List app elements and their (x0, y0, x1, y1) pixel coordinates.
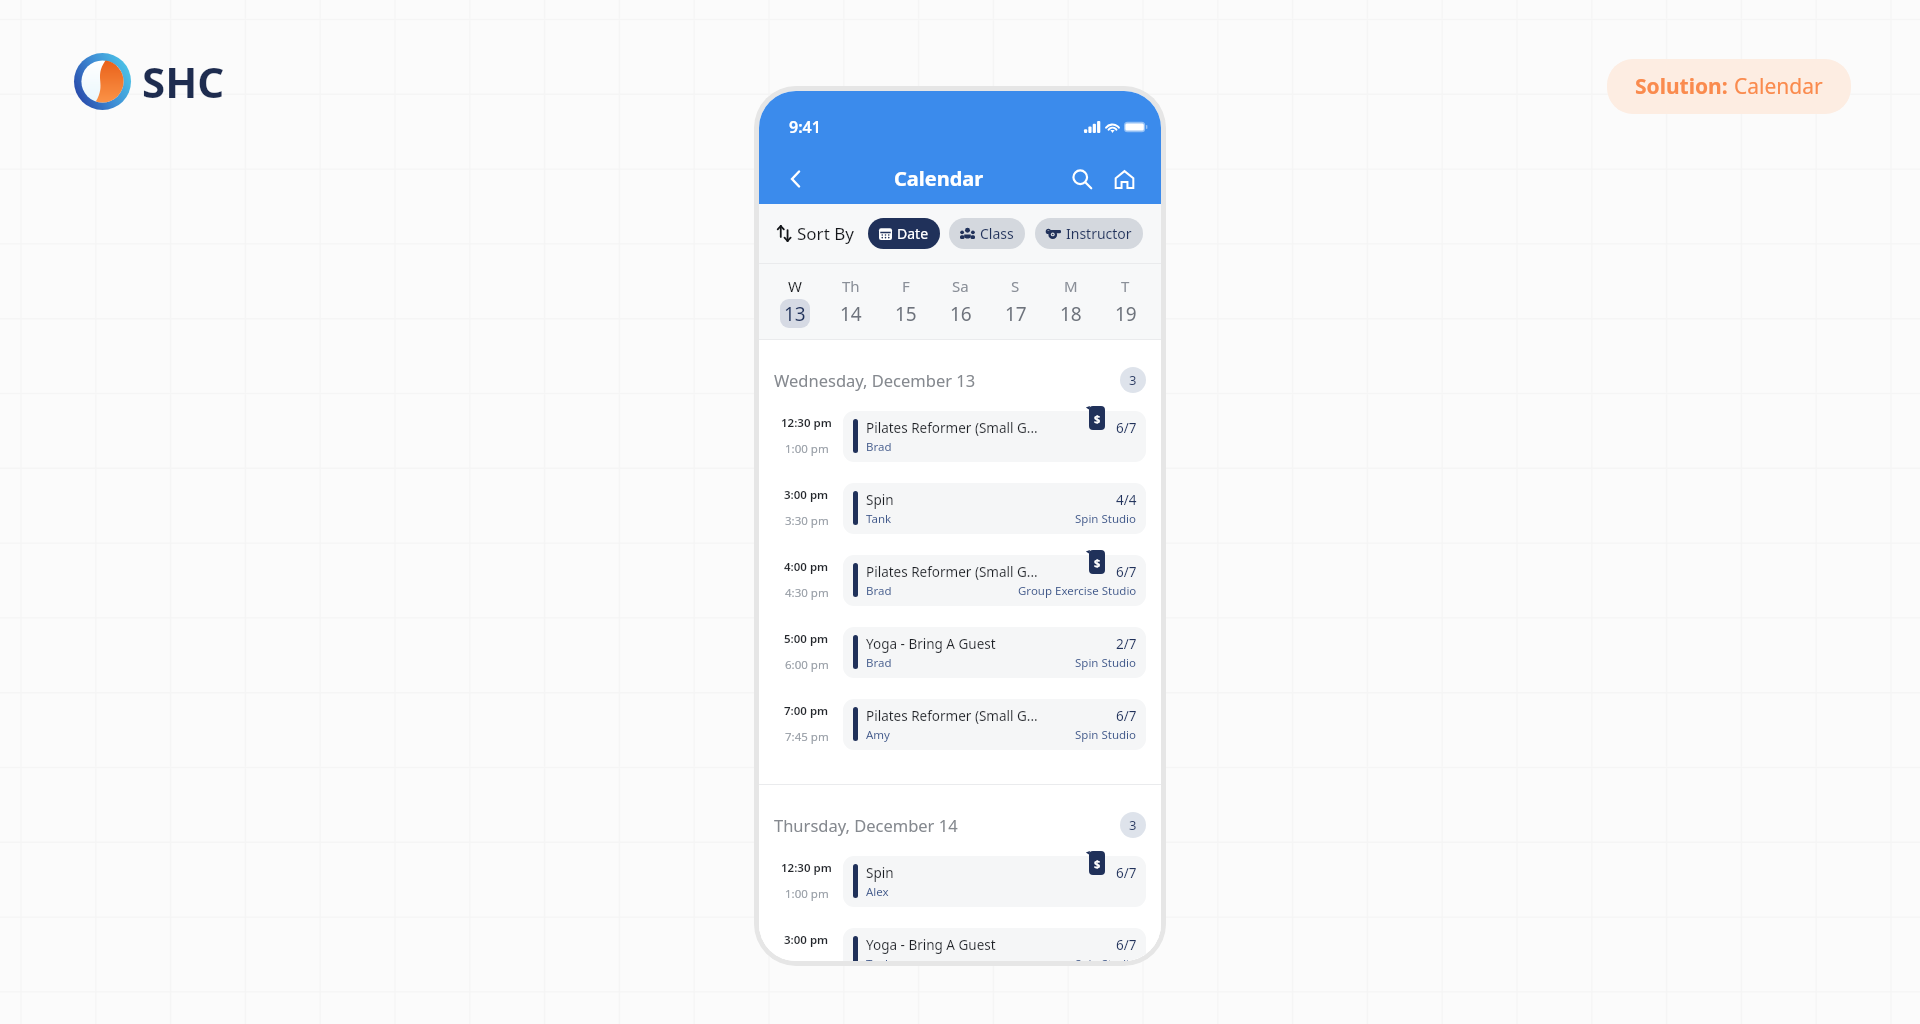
staticText: 3:00 pm (784, 932, 829, 948)
staticText: Spin Studio (1075, 655, 1137, 671)
staticText: 13 (784, 301, 806, 327)
staticText: 16 (950, 301, 972, 327)
staticText: 12:30 pm (781, 415, 832, 431)
button[interactable]: S (988, 264, 1043, 339)
staticText: Pilates Reformer (Small G... (866, 419, 1038, 437)
button[interactable]: Home (1109, 164, 1139, 194)
staticText: 4:00 pm (784, 559, 829, 575)
staticText: Sa (952, 276, 969, 296)
staticText: 17 (1005, 301, 1027, 327)
button[interactable]: 7:00 pm (772, 688, 1146, 760)
staticText: 15 (895, 301, 917, 327)
staticText: 5:00 pm (784, 631, 829, 647)
staticText: M (1064, 276, 1078, 296)
button[interactable]: Sa (933, 264, 988, 339)
button[interactable]: Date (868, 218, 940, 249)
button[interactable]: W (767, 264, 823, 339)
staticText: 3:30 pm (785, 958, 829, 961)
staticText: Sort By (797, 222, 854, 245)
staticText: Yoga - Bring A Guest (866, 936, 996, 954)
button[interactable]: 3:00 pm (772, 472, 1146, 544)
staticText: 18 (1060, 301, 1082, 327)
staticText: $ (1094, 411, 1101, 426)
button[interactable]: Th (823, 264, 878, 339)
button[interactable]: Back (781, 164, 811, 194)
staticText: Spin (866, 491, 894, 509)
button[interactable]: Solution: (1607, 59, 1851, 114)
staticText: 6/7 (1116, 936, 1137, 954)
staticText: 12:30 pm (781, 860, 832, 876)
staticText: 3:30 pm (785, 513, 829, 529)
staticText: SHC (142, 53, 225, 110)
staticText: Alex (866, 884, 889, 900)
staticText: 6/7 (1116, 419, 1137, 437)
staticText: Tank (866, 956, 892, 961)
button[interactable]: Search (1067, 164, 1097, 194)
button[interactable]: 3:00 pm (772, 917, 1146, 961)
button[interactable]: 4:00 pm (772, 544, 1146, 616)
staticText: 6/7 (1116, 864, 1137, 882)
staticText: $ (1094, 856, 1101, 871)
staticText: 6/7 (1116, 707, 1137, 725)
staticText: Spin Studio (1075, 727, 1137, 743)
button[interactable]: 12:30 pm (772, 845, 1146, 917)
button[interactable]: T (1098, 264, 1153, 339)
staticText: Amy (866, 727, 890, 743)
button[interactable]: Class (949, 218, 1025, 249)
staticText: S (1011, 276, 1020, 296)
button[interactable]: M (1043, 264, 1098, 339)
staticText: 6:00 pm (785, 657, 829, 673)
staticText: 1:00 pm (785, 441, 829, 457)
staticText: Spin (866, 864, 894, 882)
staticText: T (1121, 276, 1130, 296)
button[interactable]: 5:00 pm (772, 616, 1146, 688)
staticText: Thursday, December 14 (774, 814, 958, 836)
staticText: Brad (866, 583, 892, 599)
staticText: 6/7 (1116, 563, 1137, 581)
staticText: Date (897, 224, 929, 243)
staticText: Pilates Reformer (Small G... (866, 563, 1038, 581)
staticText: Spin Studio (1075, 511, 1137, 527)
button[interactable]: Instructor (1035, 218, 1143, 249)
staticText: 1:00 pm (785, 886, 829, 902)
staticText: Wednesday, December 13 (774, 369, 976, 391)
staticText: Calendar (1734, 72, 1823, 101)
staticText: Brad (866, 439, 892, 455)
staticText: Yoga - Bring A Guest (866, 635, 996, 653)
staticText: Group Exercise Studio (1018, 583, 1137, 599)
button[interactable]: 12:30 pm (772, 400, 1146, 472)
staticText: Calendar (894, 165, 984, 192)
staticText: 4:30 pm (785, 585, 829, 601)
staticText: 4/4 (1116, 491, 1137, 509)
staticText: Instructor (1066, 224, 1132, 243)
staticText: $ (1094, 555, 1101, 570)
staticText: 3:00 pm (784, 487, 829, 503)
staticText: 3 (1129, 816, 1137, 834)
staticText: Pilates Reformer (Small G... (866, 707, 1038, 725)
staticText: Spin Studio (1075, 956, 1137, 961)
staticText: Brad (866, 655, 892, 671)
staticText: Class (980, 224, 1014, 243)
staticText: 2/7 (1116, 635, 1137, 653)
staticText: 9:41 (789, 116, 821, 138)
staticText: 3 (1129, 371, 1137, 389)
staticText: W (788, 276, 802, 296)
staticText: 7:00 pm (784, 703, 829, 719)
staticText: F (902, 276, 910, 296)
staticText: 19 (1115, 301, 1137, 327)
staticText: Tank (866, 511, 892, 527)
staticText: 7:45 pm (785, 729, 829, 745)
button[interactable]: F (878, 264, 933, 339)
staticText: Solution: (1635, 72, 1734, 101)
staticText: 14 (840, 301, 862, 327)
staticText: Th (842, 276, 860, 296)
